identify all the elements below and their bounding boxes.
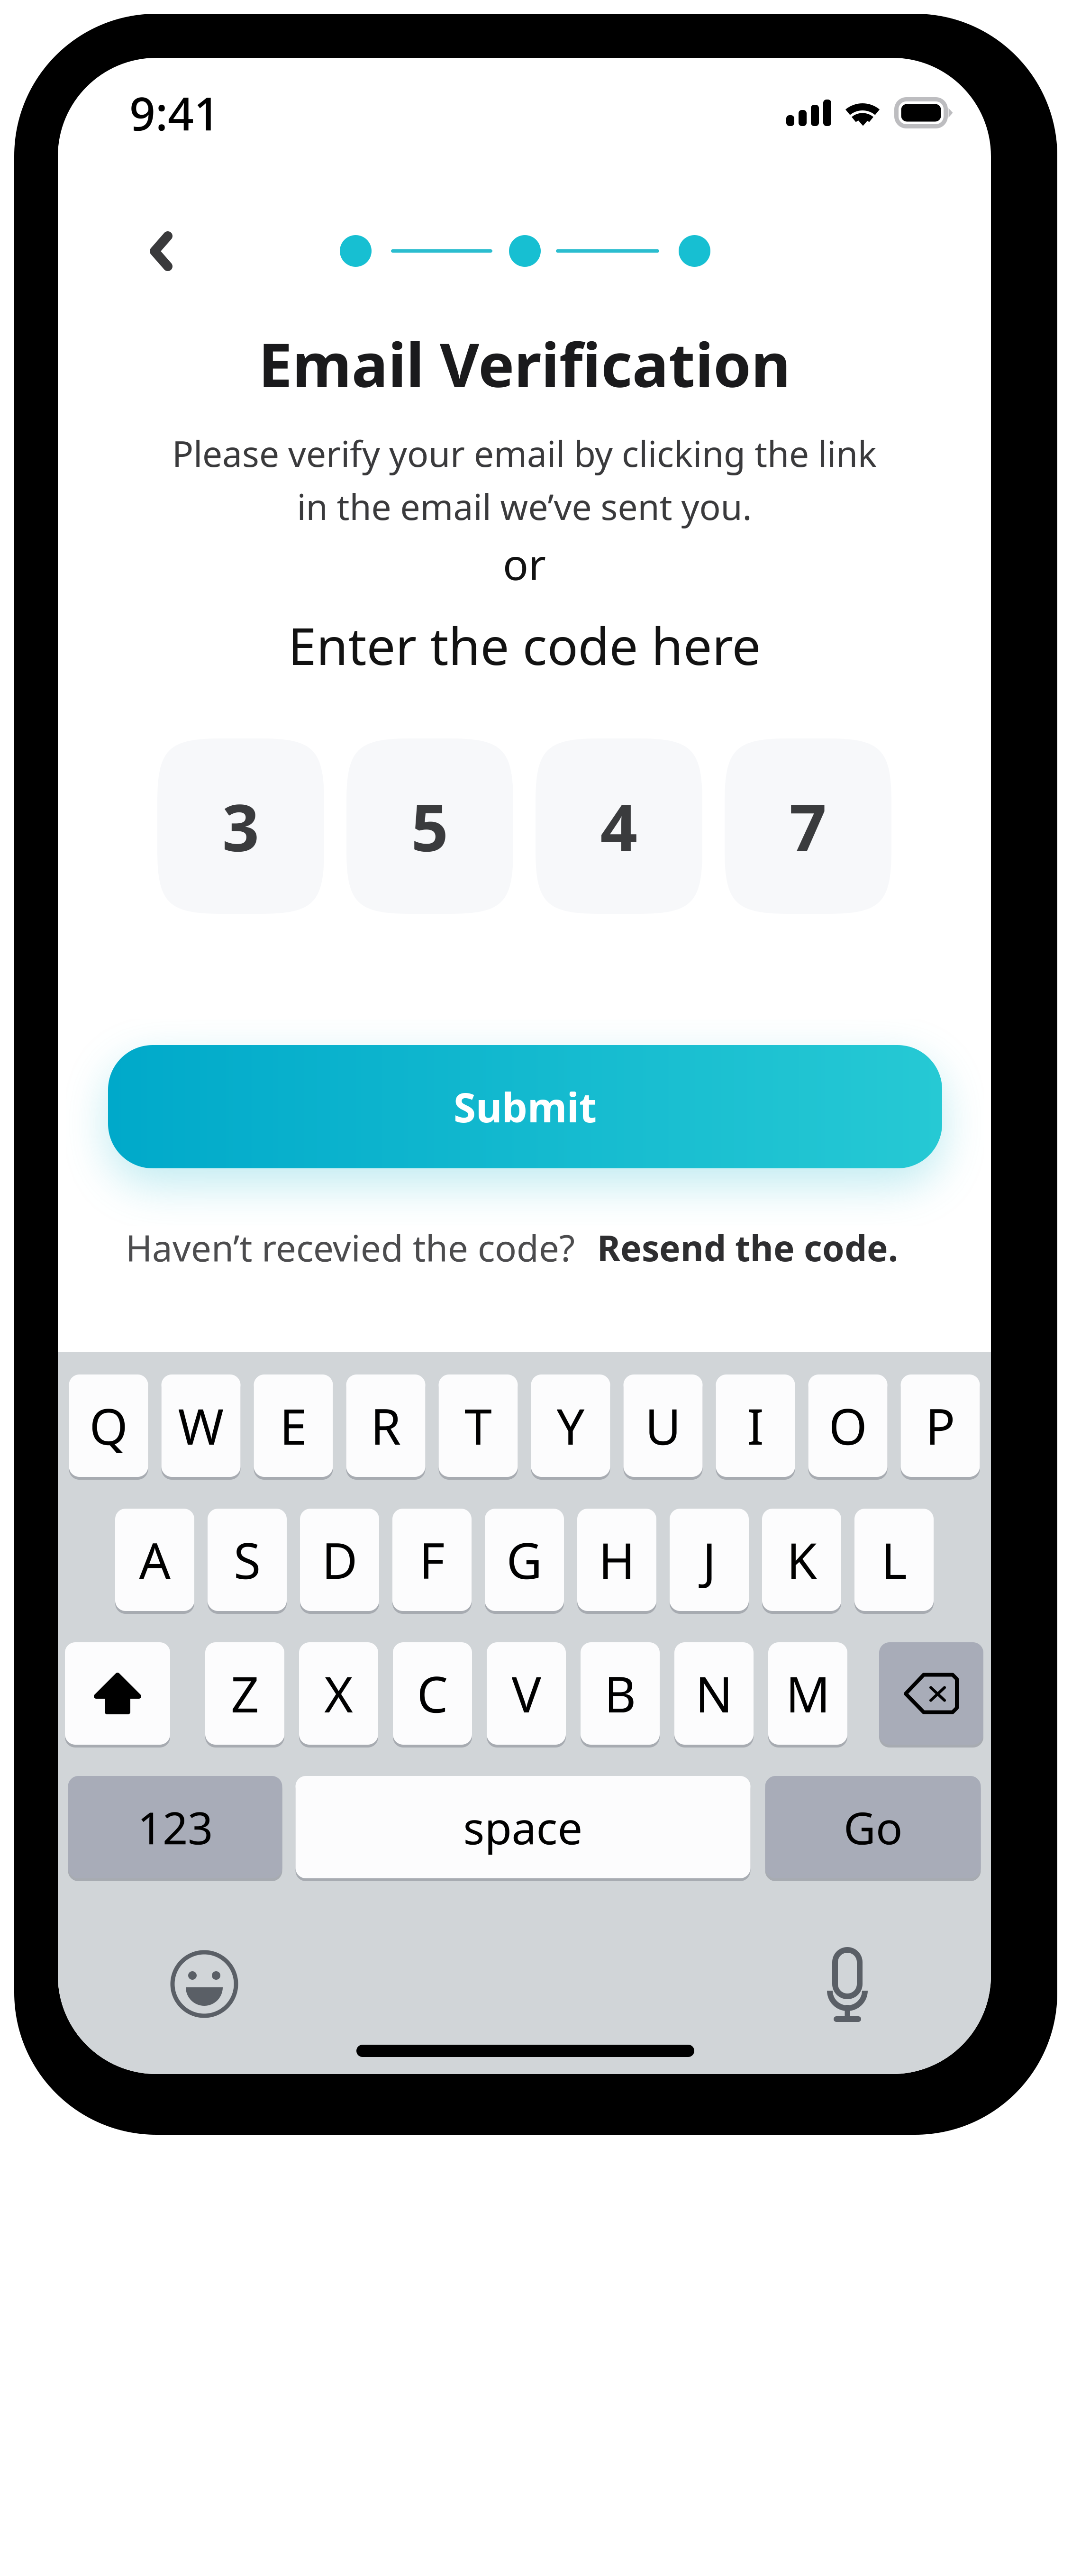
staticText: C xyxy=(417,1661,448,1726)
button[interactable]: T xyxy=(439,1374,518,1477)
staticText: E xyxy=(280,1393,307,1458)
staticText: B xyxy=(604,1661,636,1726)
staticText: Resend the code. xyxy=(597,1224,898,1271)
staticText: Y xyxy=(557,1393,585,1458)
button[interactable]: 5 xyxy=(346,738,513,914)
button[interactable]: R xyxy=(346,1374,425,1477)
staticText: or xyxy=(503,535,546,592)
staticText: M xyxy=(786,1661,830,1726)
staticText: P xyxy=(925,1393,955,1458)
staticText: Enter the code here xyxy=(288,611,761,679)
staticText: W xyxy=(178,1393,224,1458)
button[interactable]: Y xyxy=(531,1374,610,1477)
button[interactable]: K xyxy=(762,1509,841,1611)
staticText: 5 xyxy=(411,783,449,869)
button[interactable]: G xyxy=(485,1509,564,1611)
button[interactable]: W xyxy=(161,1374,241,1477)
button[interactable]: X xyxy=(299,1642,378,1745)
staticText: V xyxy=(512,1661,541,1726)
staticText: D xyxy=(322,1527,358,1593)
button[interactable]: I xyxy=(716,1374,795,1477)
button[interactable]: N xyxy=(674,1642,754,1745)
staticText: space xyxy=(463,1798,583,1856)
button[interactable]: D xyxy=(300,1509,379,1611)
button[interactable]: H xyxy=(577,1509,656,1611)
button[interactable]: B xyxy=(581,1642,660,1745)
staticText: F xyxy=(419,1527,445,1593)
button[interactable]: Back xyxy=(150,231,173,271)
staticText: Z xyxy=(231,1661,259,1726)
staticText: 123 xyxy=(137,1798,213,1856)
button[interactable]: E xyxy=(254,1374,333,1477)
button[interactable]: L xyxy=(854,1509,934,1611)
button[interactable]: M xyxy=(768,1642,847,1745)
button[interactable]: 7 xyxy=(725,738,891,914)
button[interactable]: 3 xyxy=(157,738,324,914)
staticText: Q xyxy=(89,1393,128,1458)
button[interactable]: 123 xyxy=(68,1776,282,1878)
button[interactable]: 4 xyxy=(536,738,702,914)
button[interactable]: F xyxy=(392,1509,472,1611)
button[interactable]: U xyxy=(623,1374,703,1477)
staticText: in the email we’ve sent you. xyxy=(297,483,752,530)
button[interactable]: space xyxy=(295,1776,750,1878)
staticText: Please verify your email by clicking the… xyxy=(172,430,877,477)
staticText: Go xyxy=(844,1798,902,1856)
button[interactable]: A xyxy=(115,1509,194,1611)
staticText: T xyxy=(464,1393,492,1458)
staticText: O xyxy=(829,1393,867,1458)
staticText: Email Verification xyxy=(258,323,790,404)
staticText: U xyxy=(645,1393,681,1458)
button[interactable]: Dictation xyxy=(821,1947,873,2023)
staticText: 4 xyxy=(600,783,638,869)
button[interactable]: P xyxy=(901,1374,980,1477)
staticText: Haven’t recevied the code? xyxy=(126,1224,575,1271)
button[interactable]: Z xyxy=(205,1642,284,1745)
staticText: 3 xyxy=(222,783,259,869)
staticText: S xyxy=(234,1527,261,1593)
button[interactable]: V xyxy=(487,1642,566,1745)
button[interactable]: Resend the code. xyxy=(597,1224,898,1271)
button[interactable]: C xyxy=(393,1642,472,1745)
staticText: J xyxy=(703,1527,716,1593)
button[interactable]: Shift xyxy=(65,1642,170,1745)
button[interactable]: Q xyxy=(69,1374,148,1477)
button[interactable]: Emoji keyboard xyxy=(166,1946,242,2022)
staticText: 9:41 xyxy=(129,83,220,143)
button[interactable]: Delete xyxy=(879,1642,983,1745)
staticText: R xyxy=(370,1393,401,1458)
staticText: L xyxy=(881,1527,907,1593)
staticText: Submit xyxy=(454,1080,597,1134)
button[interactable]: J xyxy=(670,1509,749,1611)
staticText: N xyxy=(695,1661,733,1726)
staticText: K xyxy=(786,1527,817,1593)
staticText: 7 xyxy=(789,783,827,869)
button[interactable]: O xyxy=(808,1374,887,1477)
staticText: I xyxy=(747,1393,764,1458)
button[interactable]: Go xyxy=(765,1776,981,1878)
staticText: X xyxy=(324,1661,353,1726)
button[interactable]: Submit xyxy=(108,1045,942,1168)
button[interactable]: S xyxy=(208,1509,287,1611)
staticText: H xyxy=(599,1527,635,1593)
staticText: G xyxy=(506,1527,542,1593)
staticText: A xyxy=(139,1527,170,1593)
